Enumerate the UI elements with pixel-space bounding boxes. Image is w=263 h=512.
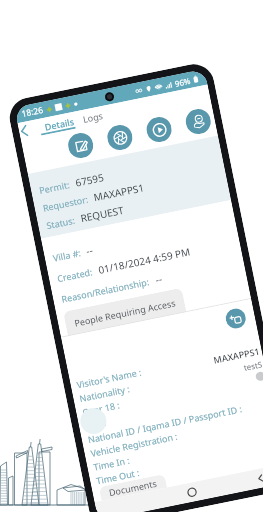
button[interactable]: People Requiring Access [72,289,178,334]
staticText: Permit: [38,178,71,196]
button[interactable]: Home [187,487,197,497]
staticText: Reason/Relationship: [60,275,151,305]
button[interactable]: Handover [183,107,213,136]
button[interactable]: Documents [107,476,158,499]
staticText: Time Out : [95,466,141,486]
button[interactable]: Back [255,473,263,484]
staticText: Villa #: [52,246,82,264]
staticText: Over 18 : [81,398,121,418]
staticText: Logs [82,109,105,125]
staticText: Vehicle Registration : [89,429,179,459]
staticText: People Requiring Access [73,296,176,329]
staticText: -- [85,243,95,258]
staticText: Visitor's Name : [76,365,143,390]
button[interactable]: Add person [224,307,248,330]
staticText: -- [154,271,164,287]
button[interactable]: Back [20,125,28,136]
button[interactable]: Start [144,115,174,144]
staticText: REQUEST [79,203,125,225]
staticText: Created: [56,265,94,284]
staticText: Requestor: [42,193,89,214]
staticText: Details [43,115,75,133]
staticText: Status: [45,214,76,231]
staticText: Time In : [92,454,131,473]
staticText: MAXAPPS1 [92,180,146,204]
staticText: MAXAPPS1 [212,344,261,366]
staticText: 01/18/2024 4:59 PM [97,244,192,277]
staticText: National ID / Iqama ID / Passport ID : [87,402,243,445]
button[interactable]: Logs [82,109,105,125]
staticText: Documents [108,477,158,498]
staticText: Nationality : [78,382,131,404]
staticText: 18:26 [20,104,44,120]
button[interactable]: Scan [105,123,135,152]
staticText: 96% [174,75,191,89]
button[interactable]: Edit [66,131,95,160]
button[interactable]: Details [43,115,75,133]
staticText: M/F : [84,416,107,432]
staticText: 67595 [74,170,105,190]
staticText: testS [243,358,263,373]
